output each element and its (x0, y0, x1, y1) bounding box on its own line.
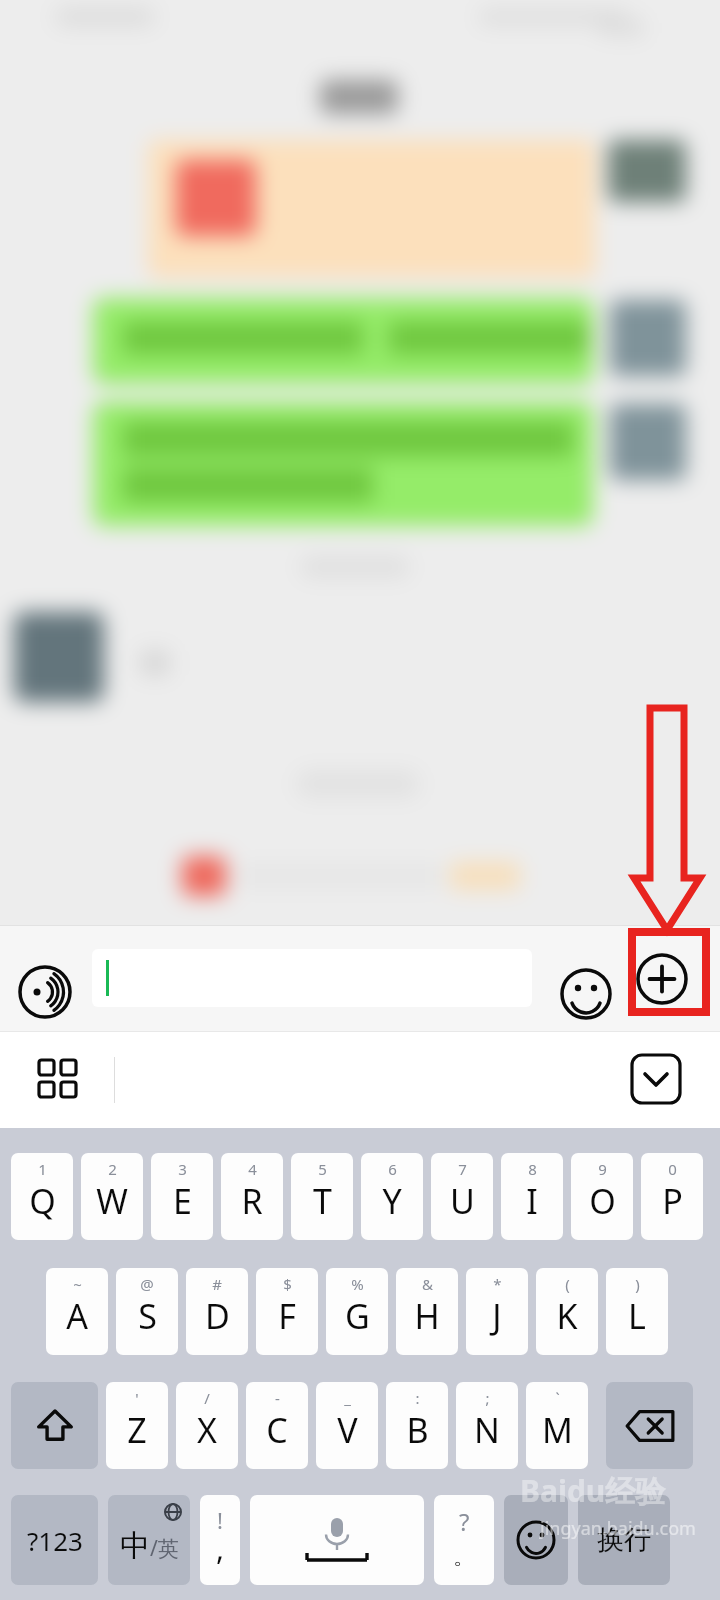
staticText: G (345, 1293, 370, 1339)
staticText: 9 (598, 1159, 607, 1179)
staticText: R (241, 1178, 263, 1224)
button[interactable]: ' (106, 1382, 168, 1469)
button[interactable]: ?123 (11, 1495, 98, 1585)
button[interactable]: 2 (81, 1153, 143, 1240)
button[interactable]: Space (250, 1495, 424, 1585)
staticText: 3 (178, 1159, 187, 1179)
button[interactable]: Hide keyboard (628, 1053, 684, 1105)
button[interactable]: Emoji (560, 968, 612, 1020)
staticText: I (526, 1178, 538, 1224)
staticText: E (173, 1178, 192, 1224)
button[interactable]: ` (526, 1382, 588, 1469)
staticText: /英 (150, 1534, 179, 1563)
button[interactable]: 9 (571, 1153, 633, 1240)
staticText: 4 (248, 1159, 257, 1179)
staticText: ( (565, 1274, 570, 1294)
button[interactable]: 换行 (578, 1495, 670, 1585)
button[interactable]: 6 (361, 1153, 423, 1240)
staticText: _ (344, 1388, 351, 1408)
staticText: ' (135, 1388, 139, 1408)
staticText: ) (635, 1274, 640, 1294)
staticText: 6 (388, 1159, 397, 1179)
button[interactable] (11, 1382, 98, 1469)
staticText: J (492, 1293, 502, 1339)
staticText: & (422, 1274, 433, 1294)
button[interactable]: ) (606, 1268, 668, 1355)
staticText: ; (485, 1388, 490, 1408)
staticText: B (406, 1407, 429, 1453)
button[interactable]: ; (456, 1382, 518, 1469)
staticText: 2 (108, 1159, 117, 1179)
button[interactable]: / (176, 1382, 238, 1469)
button[interactable]: ~ (46, 1268, 108, 1355)
button[interactable]: _ (316, 1382, 378, 1469)
staticText: S (138, 1293, 157, 1339)
button[interactable]: & (396, 1268, 458, 1355)
button[interactable] (92, 949, 532, 1007)
staticText: M (542, 1407, 573, 1453)
staticText: H (414, 1293, 440, 1339)
staticText: : (415, 1388, 420, 1408)
staticText: $ (283, 1274, 292, 1294)
staticText: 8 (528, 1159, 537, 1179)
staticText: A (66, 1293, 88, 1339)
button[interactable]: - (246, 1382, 308, 1469)
staticText: 1 (38, 1159, 47, 1179)
staticText: O (589, 1178, 616, 1224)
button[interactable]: 0 (641, 1153, 703, 1240)
button[interactable] (606, 1382, 693, 1469)
button[interactable]: 8 (501, 1153, 563, 1240)
staticText: / (204, 1388, 210, 1408)
staticText: - (275, 1388, 280, 1408)
staticText: Q (29, 1178, 56, 1224)
button[interactable]: % (326, 1268, 388, 1355)
staticText: 换行 (597, 1523, 651, 1557)
button[interactable]: ( (536, 1268, 598, 1355)
button[interactable]: $ (256, 1268, 318, 1355)
staticText: Z (127, 1407, 147, 1453)
staticText: 0 (668, 1159, 677, 1179)
button[interactable]: : (386, 1382, 448, 1469)
button[interactable]: Keyboard modes (36, 1057, 82, 1103)
button[interactable]: Voice input (18, 965, 72, 1019)
staticText: L (628, 1293, 646, 1339)
staticText: ?123 (27, 1523, 83, 1558)
staticText: 5 (318, 1159, 327, 1179)
staticText: ~ (73, 1274, 82, 1294)
staticText: P (662, 1178, 683, 1224)
staticText: jingyan.baidu.com (540, 1516, 696, 1541)
staticText: 。 (453, 1543, 475, 1571)
button[interactable]: 中 (108, 1495, 190, 1585)
button[interactable]: 4 (221, 1153, 283, 1240)
button[interactable]: Emoji keyboard (504, 1495, 568, 1585)
staticText: W (96, 1178, 128, 1224)
staticText: , (216, 1528, 225, 1569)
staticText: X (197, 1407, 217, 1453)
staticText: @ (140, 1274, 154, 1294)
staticText: K (556, 1293, 578, 1339)
button[interactable]: # (186, 1268, 248, 1355)
staticText: F (278, 1293, 296, 1339)
staticText: N (474, 1407, 500, 1453)
staticText: 中 (120, 1527, 150, 1565)
button[interactable]: ? (434, 1495, 494, 1585)
staticText: V (337, 1407, 358, 1453)
button[interactable]: More functions (636, 953, 688, 1005)
button[interactable]: @ (116, 1268, 178, 1355)
button[interactable]: 7 (431, 1153, 493, 1240)
button[interactable]: 5 (291, 1153, 353, 1240)
staticText: 7 (458, 1159, 467, 1179)
button[interactable]: ! (200, 1495, 240, 1585)
staticText: ? (459, 1505, 470, 1538)
button[interactable]: * (466, 1268, 528, 1355)
button[interactable]: 1 (11, 1153, 73, 1240)
staticText: # (212, 1274, 222, 1294)
staticText: * (493, 1274, 502, 1294)
staticText: % (351, 1274, 364, 1294)
staticText: Baidu经验 (520, 1470, 666, 1511)
button[interactable]: 3 (151, 1153, 213, 1240)
staticText: D (205, 1293, 230, 1339)
staticText: ! (217, 1505, 223, 1535)
staticText: ` (555, 1388, 560, 1408)
